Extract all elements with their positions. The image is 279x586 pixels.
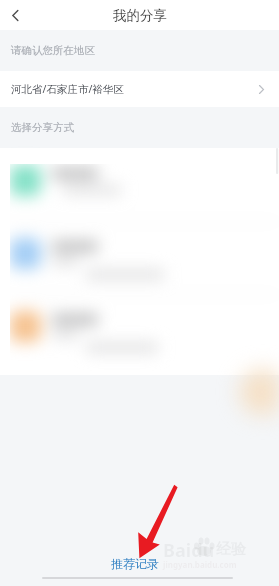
staticText: 请确认您所在地区 [11, 44, 95, 57]
button[interactable] [0, 294, 279, 367]
staticText: 选择分享方式 [11, 121, 74, 134]
staticText: 我的分享 [113, 7, 167, 24]
staticText: 推荐记录 [111, 556, 159, 571]
button[interactable] [0, 148, 279, 221]
button[interactable]: Back [0, 0, 30, 30]
staticText: Baidu [163, 538, 215, 563]
staticText: 经验 [216, 540, 246, 559]
button[interactable] [0, 221, 279, 294]
button[interactable]: 河北省/石家庄市/裕华区 [0, 71, 279, 107]
staticText: jingyan.baidu.com [163, 559, 237, 570]
button[interactable]: 推荐记录 [110, 556, 160, 571]
staticText: 河北省/石家庄市/裕华区 [11, 82, 124, 96]
